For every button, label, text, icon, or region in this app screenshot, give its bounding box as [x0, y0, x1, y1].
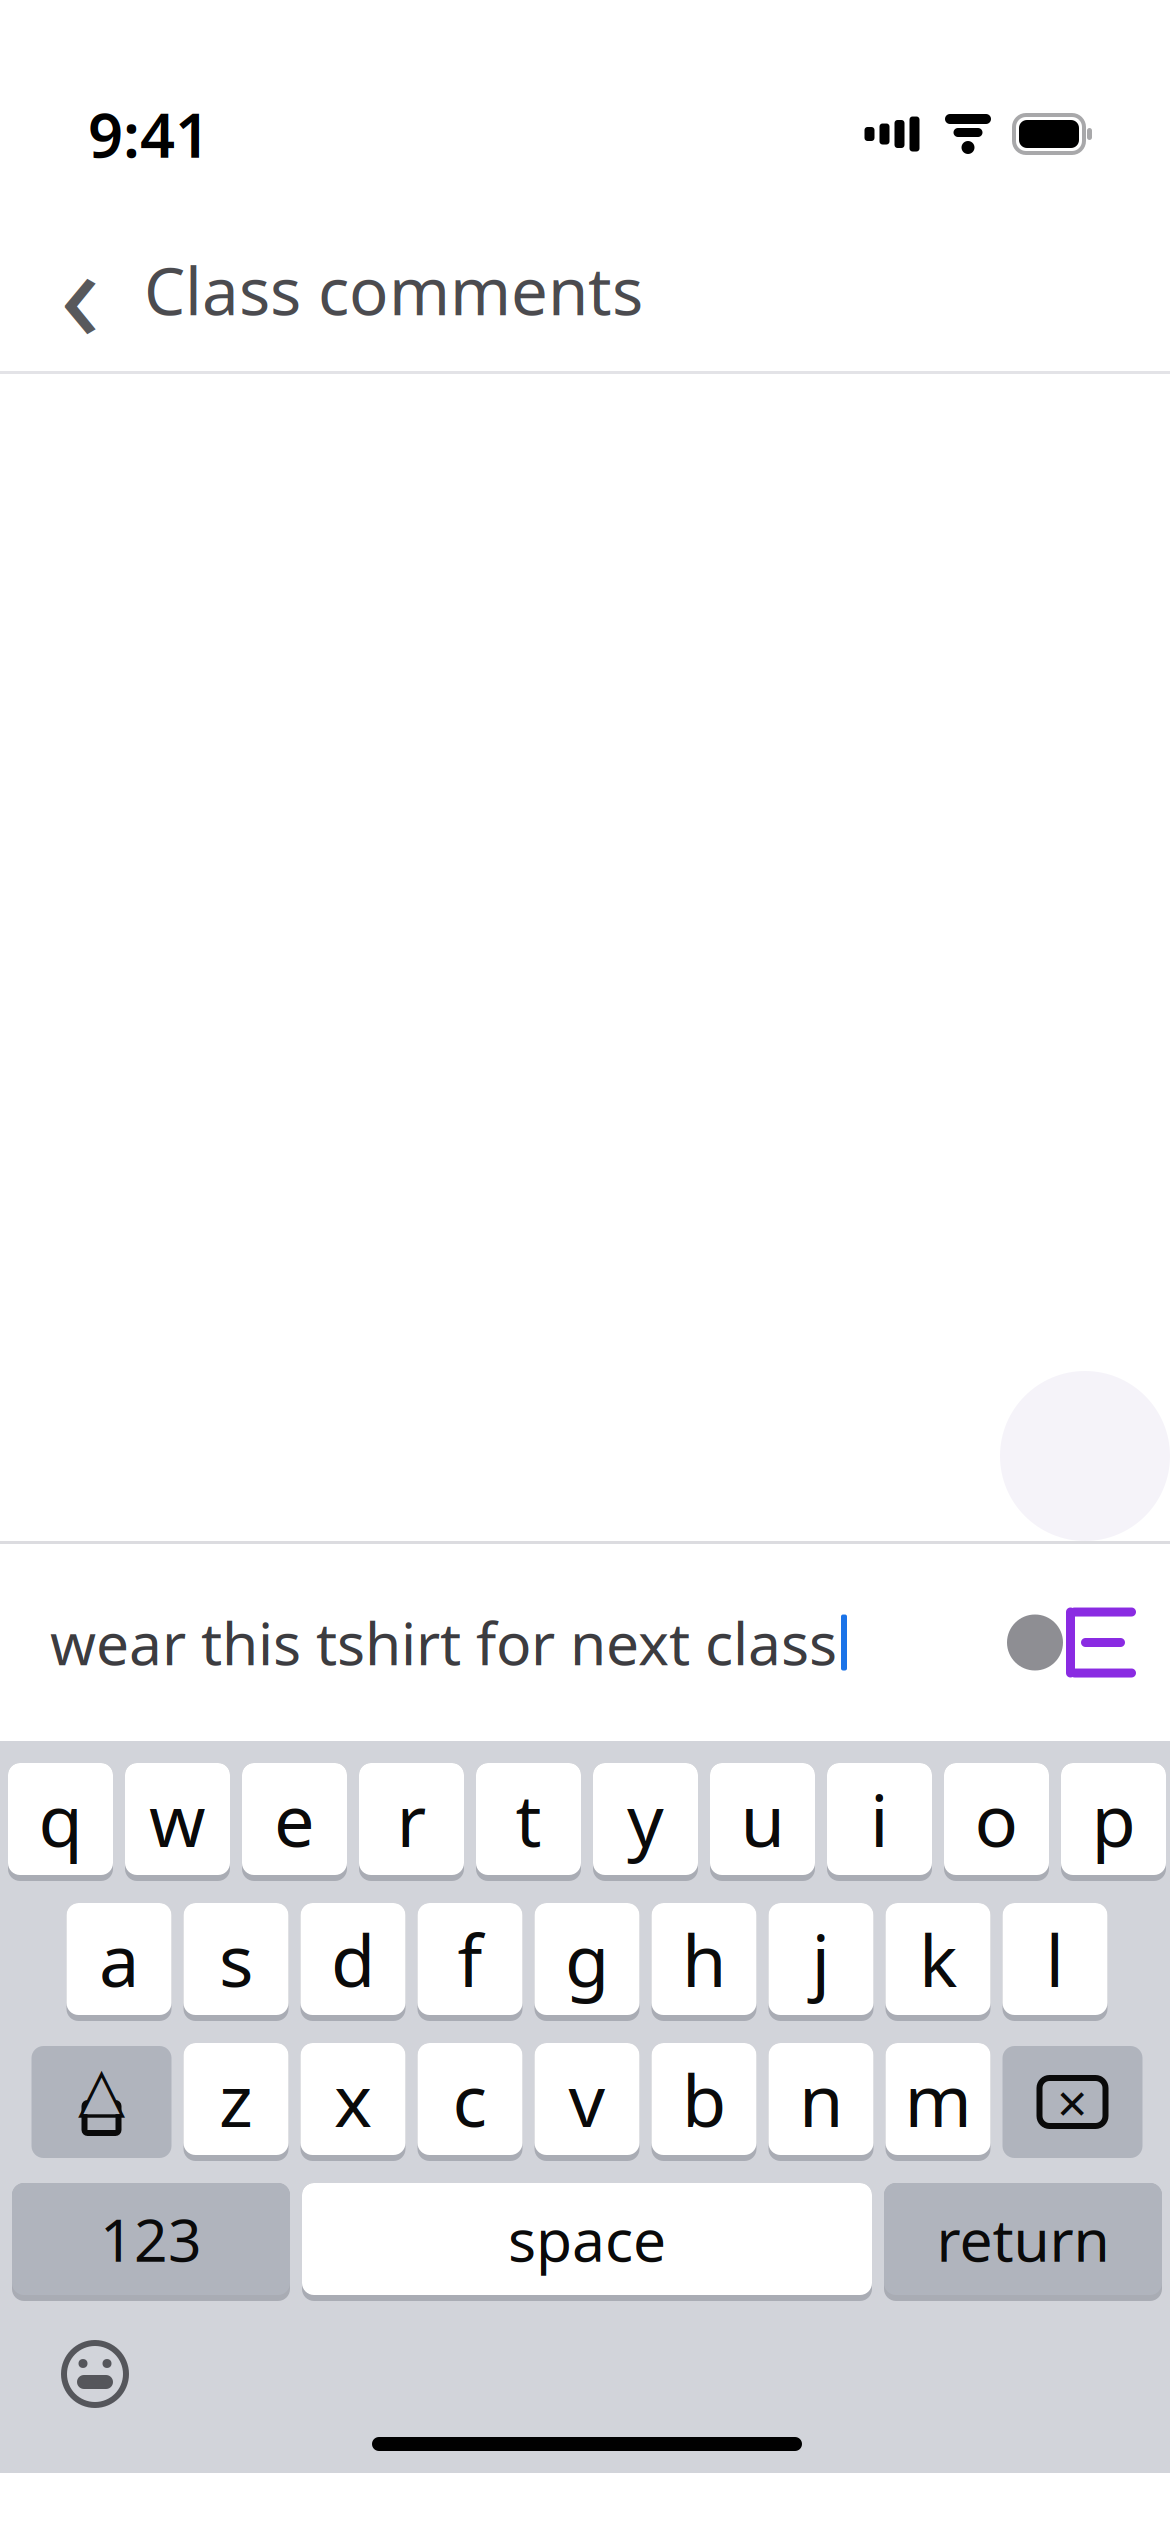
button[interactable]: w [125, 1763, 230, 1881]
staticText: t [515, 1771, 541, 1867]
button[interactable]: f [417, 1903, 522, 2021]
staticText: 9:41 [88, 93, 210, 175]
staticText: u [740, 1771, 784, 1867]
staticText: × [1057, 2067, 1088, 2137]
button[interactable]: l [1002, 1903, 1107, 2021]
staticText: a [99, 1911, 139, 2007]
staticText: Class comments [144, 247, 643, 333]
staticText: i [870, 1771, 889, 1867]
button[interactable]: k [885, 1903, 990, 2021]
button[interactable]: return [884, 2183, 1162, 2301]
staticText: y [627, 1771, 664, 1867]
staticText: wear this tshirt for next class [50, 1603, 837, 1681]
button[interactable]: u [710, 1763, 815, 1881]
staticText: h [682, 1911, 726, 2007]
staticText: f [457, 1911, 482, 2007]
staticText: e [274, 1771, 315, 1867]
staticText: c [452, 2051, 487, 2147]
button[interactable]: i [827, 1763, 932, 1881]
staticText: return [936, 2200, 1109, 2278]
button[interactable]: Back [28, 230, 132, 350]
staticText: ‹ [59, 201, 100, 379]
staticText: d [331, 1911, 375, 2007]
button[interactable]: z [183, 2043, 288, 2161]
button[interactable]: Emoji keyboard [40, 2319, 150, 2429]
button[interactable]: Send [1000, 1582, 1150, 1702]
button[interactable]: a [66, 1903, 171, 2021]
staticText: k [919, 1911, 957, 2007]
staticText: z [219, 2051, 253, 2147]
staticText: b [682, 2051, 726, 2147]
button[interactable]: b [651, 2043, 756, 2161]
staticText: j [811, 1911, 830, 2007]
button[interactable]: t [476, 1763, 581, 1881]
button[interactable]: n [768, 2043, 873, 2161]
button[interactable]: 123 [12, 2183, 290, 2301]
staticText: w [149, 1771, 206, 1867]
staticText: ▲ [81, 2059, 122, 2119]
button[interactable]: e [242, 1763, 347, 1881]
button[interactable]: p [1061, 1763, 1166, 1881]
button[interactable]: space [302, 2183, 872, 2301]
button[interactable]: Shift [31, 2043, 171, 2161]
staticText: n [799, 2051, 843, 2147]
staticText: v [568, 2051, 605, 2147]
staticText: m [904, 2051, 971, 2147]
staticText: g [565, 1911, 609, 2007]
button[interactable]: Delete [1002, 2043, 1142, 2161]
staticText: space [508, 2200, 666, 2278]
button[interactable]: y [593, 1763, 698, 1881]
button[interactable]: h [651, 1903, 756, 2021]
button[interactable]: x [300, 2043, 405, 2161]
button[interactable]: o [944, 1763, 1049, 1881]
staticText: s [219, 1911, 253, 2007]
staticText: x [334, 2051, 372, 2147]
button[interactable]: q [8, 1763, 113, 1881]
button[interactable]: v [534, 2043, 639, 2161]
staticText: q [38, 1771, 82, 1867]
button[interactable]: m [885, 2043, 990, 2161]
button[interactable]: s [183, 1903, 288, 2021]
button[interactable]: r [359, 1763, 464, 1881]
button[interactable]: j [768, 1903, 873, 2021]
staticText: r [396, 1771, 426, 1867]
staticText: o [974, 1771, 1018, 1867]
button[interactable]: d [300, 1903, 405, 2021]
staticText: △ [78, 2054, 125, 2124]
staticText: 123 [100, 2200, 202, 2278]
button[interactable]: g [534, 1903, 639, 2021]
staticText: l [1045, 1911, 1064, 2007]
staticText: p [1091, 1771, 1135, 1867]
button[interactable]: c [417, 2043, 522, 2161]
